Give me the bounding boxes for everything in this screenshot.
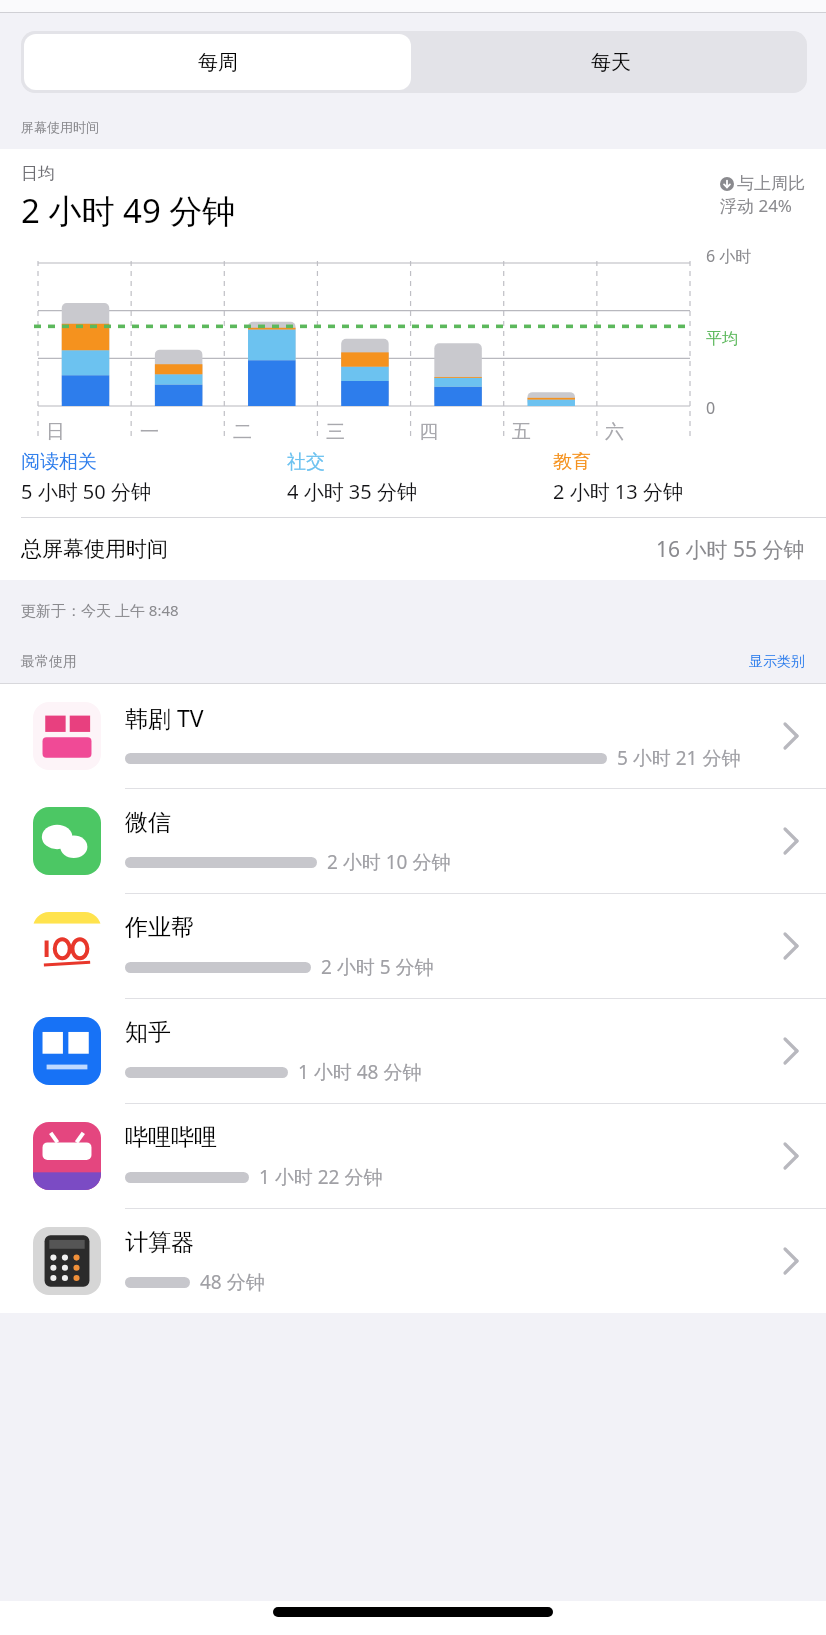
staticText: 哔哩哔哩: [125, 1123, 217, 1152]
staticText: 知乎: [125, 1018, 171, 1047]
other: 打开 知乎 详情: [776, 999, 806, 1103]
staticText: 四: [419, 420, 438, 444]
staticText: 日: [46, 420, 65, 444]
staticText: 16 小时 55 分钟: [656, 535, 805, 564]
staticText: 屏幕使用时间: [21, 119, 99, 135]
staticText: 2 小时 13 分钟: [553, 478, 683, 505]
staticText: 日均: [21, 163, 55, 184]
staticText: 2 小时 5 分钟: [321, 954, 434, 980]
staticText: 微信: [125, 808, 171, 837]
staticText: 与上周比: [737, 173, 805, 194]
staticText: 0: [706, 397, 716, 419]
staticText: 浮动 24%: [720, 194, 792, 217]
staticText: 5 小时 21 分钟: [617, 745, 741, 771]
button[interactable]: 每周: [24, 34, 411, 90]
staticText: 五: [512, 420, 531, 444]
staticText: 六: [605, 420, 624, 444]
button[interactable]: 计算器: [0, 1208, 826, 1313]
other: 打开 韩剧 TV 详情: [776, 684, 806, 788]
staticText: 2 小时 49 分钟: [21, 188, 236, 233]
staticText: 社交: [287, 450, 325, 474]
other: 打开 哔哩哔哩 详情: [776, 1104, 806, 1208]
other: 打开 作业帮 详情: [776, 894, 806, 998]
button[interactable]: 哔哩哔哩: [0, 1103, 826, 1208]
other: 打开 计算器 详情: [776, 1209, 806, 1313]
staticText: 6 小时: [706, 245, 752, 267]
button[interactable]: 微信: [0, 788, 826, 893]
button[interactable]: 作业帮: [0, 893, 826, 998]
staticText: 韩剧 TV: [125, 702, 204, 733]
staticText: 二: [233, 420, 252, 444]
button[interactable]: 显示类别: [749, 653, 805, 671]
staticText: 教育: [553, 450, 591, 474]
staticText: 三: [326, 420, 345, 444]
staticText: 1 小时 22 分钟: [259, 1164, 383, 1190]
staticText: 总屏幕使用时间: [21, 536, 168, 562]
staticText: 平均: [706, 329, 738, 349]
staticText: 计算器: [125, 1228, 194, 1257]
staticText: 更新于：今天 上午 8:48: [21, 600, 179, 620]
staticText: 4 小时 35 分钟: [287, 478, 417, 505]
staticText: 每天: [591, 50, 631, 75]
staticText: 阅读相关: [21, 450, 97, 474]
staticText: 48 分钟: [200, 1269, 265, 1295]
staticText: 1 小时 48 分钟: [298, 1059, 422, 1085]
staticText: 一: [140, 420, 159, 444]
other: 打开 微信 详情: [776, 789, 806, 893]
staticText: 显示类别: [749, 653, 805, 671]
button[interactable]: 知乎: [0, 998, 826, 1103]
staticText: 最常使用: [21, 653, 77, 671]
staticText: 2 小时 10 分钟: [327, 849, 451, 875]
staticText: 作业帮: [125, 913, 194, 942]
button[interactable]: 韩剧 TV: [0, 684, 826, 788]
button[interactable]: 每天: [414, 31, 807, 93]
staticText: 每周: [198, 50, 238, 75]
staticText: 5 小时 50 分钟: [21, 478, 151, 505]
